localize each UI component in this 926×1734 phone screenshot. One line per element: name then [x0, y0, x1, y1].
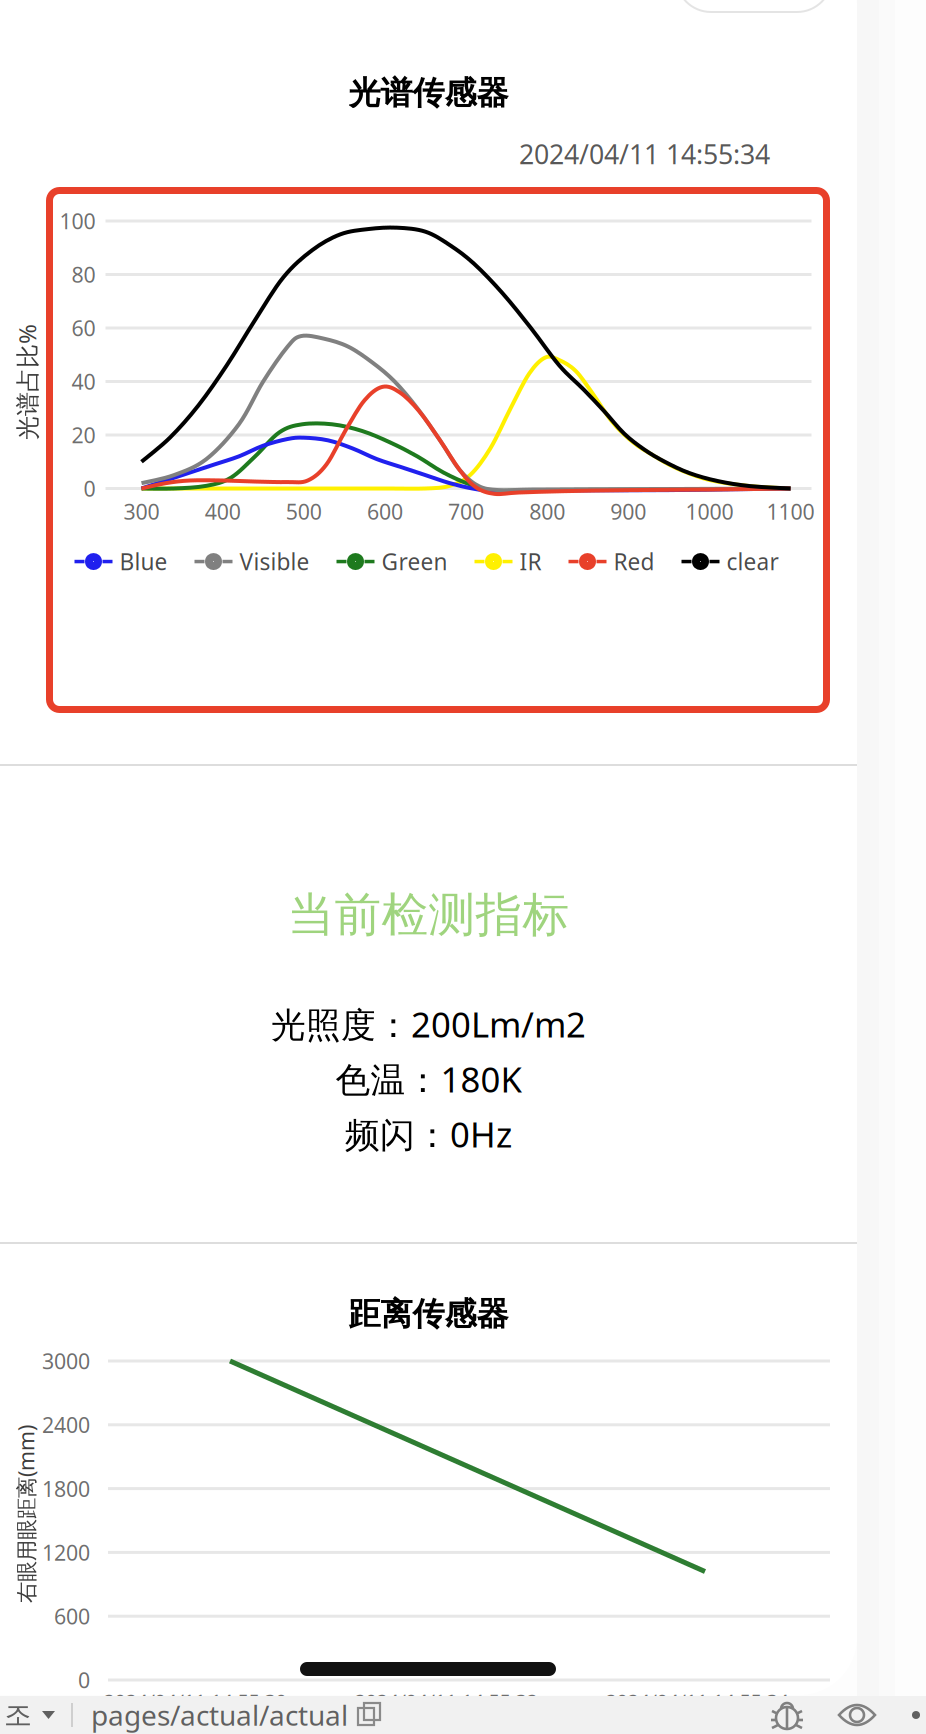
- button[interactable]: Green: [335, 546, 447, 577]
- staticText: 700: [448, 497, 484, 526]
- staticText: 1200: [42, 1538, 90, 1566]
- staticText: 距离传感器: [348, 1294, 508, 1334]
- staticText: 400: [205, 497, 241, 526]
- staticText: 600: [367, 497, 403, 526]
- button[interactable]: pages/actual/actual: [73, 1696, 382, 1734]
- staticText: 2400: [42, 1411, 90, 1439]
- staticText: 60: [71, 314, 95, 342]
- staticText: 1100: [766, 497, 814, 526]
- staticText: Red: [613, 546, 654, 577]
- staticText: 2024/04/11 14:55:30: [103, 1688, 286, 1714]
- staticText: 0: [78, 1666, 90, 1694]
- staticText: 300: [123, 497, 159, 526]
- staticText: 频闪：0Hz: [345, 1111, 512, 1157]
- staticText: 当前检测指标: [287, 886, 569, 944]
- staticText: 2024/04/11 14:55:32: [354, 1688, 537, 1714]
- staticText: 20: [71, 421, 95, 449]
- staticText: 80: [71, 260, 95, 289]
- staticText: 光谱传感器: [348, 73, 508, 113]
- staticText: 3000: [42, 1347, 90, 1375]
- staticText: 40: [71, 367, 95, 396]
- staticText: 900: [610, 497, 646, 526]
- button[interactable]: Red: [567, 546, 654, 577]
- staticText: Green: [381, 546, 447, 577]
- staticText: 600: [54, 1602, 90, 1630]
- button[interactable]: clear: [680, 546, 778, 577]
- staticText: 2024/04/11 14:55:34: [519, 136, 770, 172]
- button[interactable]: Preview: [838, 1700, 876, 1730]
- button[interactable]: Debug: [770, 1698, 804, 1732]
- button[interactable]: Simulator device: [0, 1698, 55, 1732]
- staticText: pages/actual/actual: [91, 1696, 348, 1734]
- staticText: clear: [726, 546, 778, 577]
- staticText: 1800: [42, 1474, 90, 1503]
- staticText: Blue: [119, 546, 167, 577]
- staticText: 조: [4, 1698, 32, 1732]
- staticText: Visible: [239, 546, 309, 577]
- staticText: 光谱占比%: [0, 366, 85, 398]
- staticText: IR: [519, 546, 541, 577]
- staticText: 光照度：200Lm/m2: [271, 1001, 586, 1047]
- staticText: 800: [529, 497, 565, 526]
- button[interactable]: Visible: [193, 546, 309, 577]
- staticText: 1000: [685, 497, 733, 526]
- staticText: 右眼用眼距离(mm): [0, 1500, 115, 1528]
- staticText: 100: [59, 207, 95, 235]
- staticText: 2024/04/11 14:55:34: [605, 1688, 788, 1714]
- button[interactable]: IR: [473, 546, 541, 577]
- staticText: 500: [286, 497, 322, 526]
- staticText: 色温：180K: [335, 1056, 521, 1102]
- button[interactable]: Blue: [73, 546, 167, 577]
- staticText: 0: [83, 474, 95, 503]
